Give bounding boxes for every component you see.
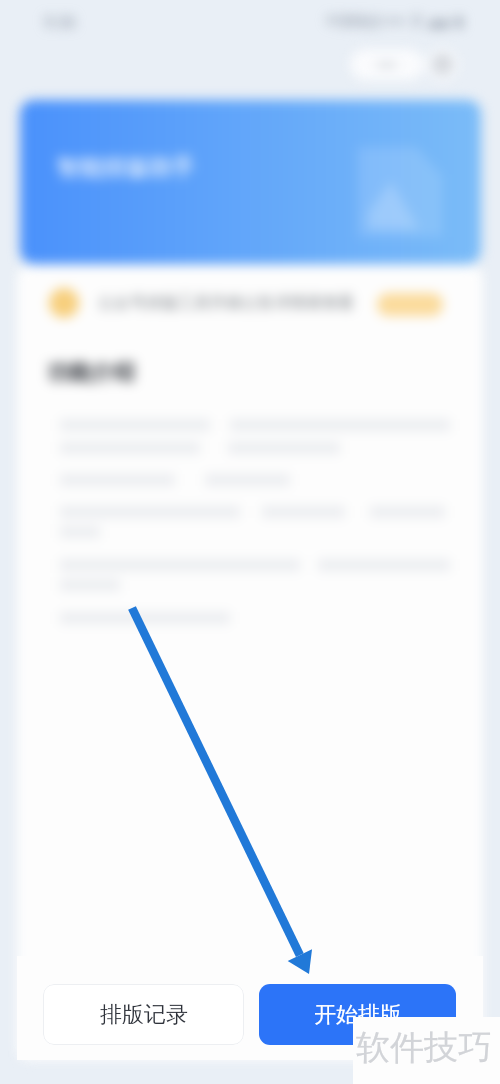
button[interactable]: More bbox=[350, 49, 424, 80]
staticText: 9:36 bbox=[44, 11, 76, 33]
staticText: 软件技巧 bbox=[356, 1026, 492, 1069]
staticText: 排版记录 bbox=[100, 1001, 188, 1029]
button[interactable]: 智能排版助手 bbox=[20, 100, 481, 264]
button[interactable] bbox=[377, 293, 443, 316]
staticText: 功能介绍 bbox=[47, 359, 135, 387]
button[interactable]: Close bbox=[427, 49, 458, 80]
staticText: 开始排版 bbox=[314, 1001, 402, 1029]
staticText: 中国电信 ▾ ▾ ☰ ◢◢ ▮ bbox=[326, 11, 464, 30]
button[interactable]: 开始排版 bbox=[259, 984, 456, 1045]
staticText: 智能排版助手 bbox=[57, 153, 195, 182]
button[interactable]: 排版记录 bbox=[43, 984, 244, 1045]
staticText: 公众号排版工具升级公告详情请查看 bbox=[98, 293, 354, 313]
